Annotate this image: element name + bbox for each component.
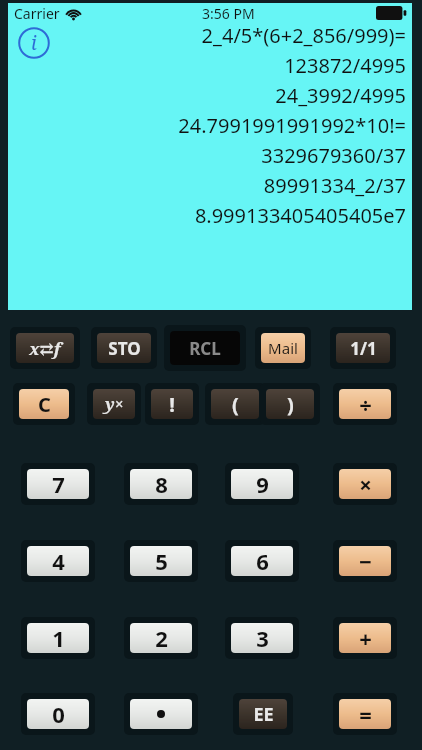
staticText: 3329679360/37 <box>261 142 406 169</box>
button[interactable]: 6 <box>225 540 299 582</box>
staticText: 3:56 PM <box>202 4 255 23</box>
staticText: 24_3992/4995 <box>275 82 406 109</box>
staticText: − <box>359 546 372 576</box>
button[interactable]: ) <box>260 383 320 425</box>
staticText: 8.999133405405405e7 <box>194 202 406 229</box>
staticText: 123872/4995 <box>284 52 406 79</box>
staticText: STO <box>108 337 141 360</box>
button[interactable]: 3 <box>225 617 299 659</box>
staticText: Carrier <box>14 4 60 23</box>
staticText: 89991334_2/37 <box>263 172 406 199</box>
button[interactable]: 0 <box>21 693 95 735</box>
staticText: x⇄f <box>29 337 61 360</box>
button[interactable]: 8 <box>124 463 198 505</box>
staticText: ( <box>232 391 239 418</box>
button[interactable]: 4 <box>21 540 95 582</box>
button[interactable]: 1/1 <box>330 327 396 369</box>
button[interactable]: ( <box>205 383 265 425</box>
staticText: 2_4/5*(6+2_856/999)= <box>201 22 406 49</box>
staticText: 2 <box>155 623 168 653</box>
staticText: × <box>359 469 372 499</box>
staticText: 6 <box>256 546 269 576</box>
staticText: 7 <box>52 469 65 499</box>
button[interactable]: ÷ <box>333 383 397 425</box>
staticText: ÷ <box>359 389 372 419</box>
staticText: C <box>38 391 51 418</box>
staticText: 1 <box>52 623 65 653</box>
staticText: 24.7991991991992*10!= <box>178 112 406 139</box>
button[interactable]: + <box>333 617 397 659</box>
button[interactable]: = <box>333 693 397 735</box>
button[interactable]: 7 <box>21 463 95 505</box>
staticText: i <box>31 30 37 56</box>
staticText: 4 <box>52 546 65 576</box>
button[interactable]: y× <box>87 383 141 425</box>
button[interactable]: ! <box>145 383 199 425</box>
button[interactable] <box>124 693 198 735</box>
staticText: + <box>359 623 372 653</box>
button[interactable]: 9 <box>225 463 299 505</box>
staticText: 8 <box>155 469 168 499</box>
staticText: ) <box>287 391 294 418</box>
button[interactable]: − <box>333 540 397 582</box>
button[interactable]: C <box>13 383 75 425</box>
button[interactable]: 2 <box>124 617 198 659</box>
staticText: 5 <box>155 546 168 576</box>
staticText: RCL <box>189 337 221 360</box>
button[interactable]: x⇄f <box>10 327 80 369</box>
staticText: 9 <box>256 469 269 499</box>
button[interactable]: Info <box>14 23 54 63</box>
staticText: Mail <box>268 338 298 358</box>
button[interactable]: EE <box>233 693 293 735</box>
button[interactable]: 5 <box>124 540 198 582</box>
button[interactable]: RCL <box>164 325 246 371</box>
button[interactable]: STO <box>91 327 157 369</box>
staticText: y× <box>105 393 124 415</box>
staticText: 1/1 <box>350 337 377 360</box>
staticText: EE <box>253 702 274 727</box>
button[interactable]: Mail <box>255 327 311 369</box>
staticText: 0 <box>52 699 65 729</box>
staticText: 3 <box>256 623 269 653</box>
button[interactable]: 1 <box>21 617 95 659</box>
button[interactable]: × <box>333 463 397 505</box>
staticText: ! <box>169 391 175 418</box>
staticText: = <box>359 699 372 729</box>
